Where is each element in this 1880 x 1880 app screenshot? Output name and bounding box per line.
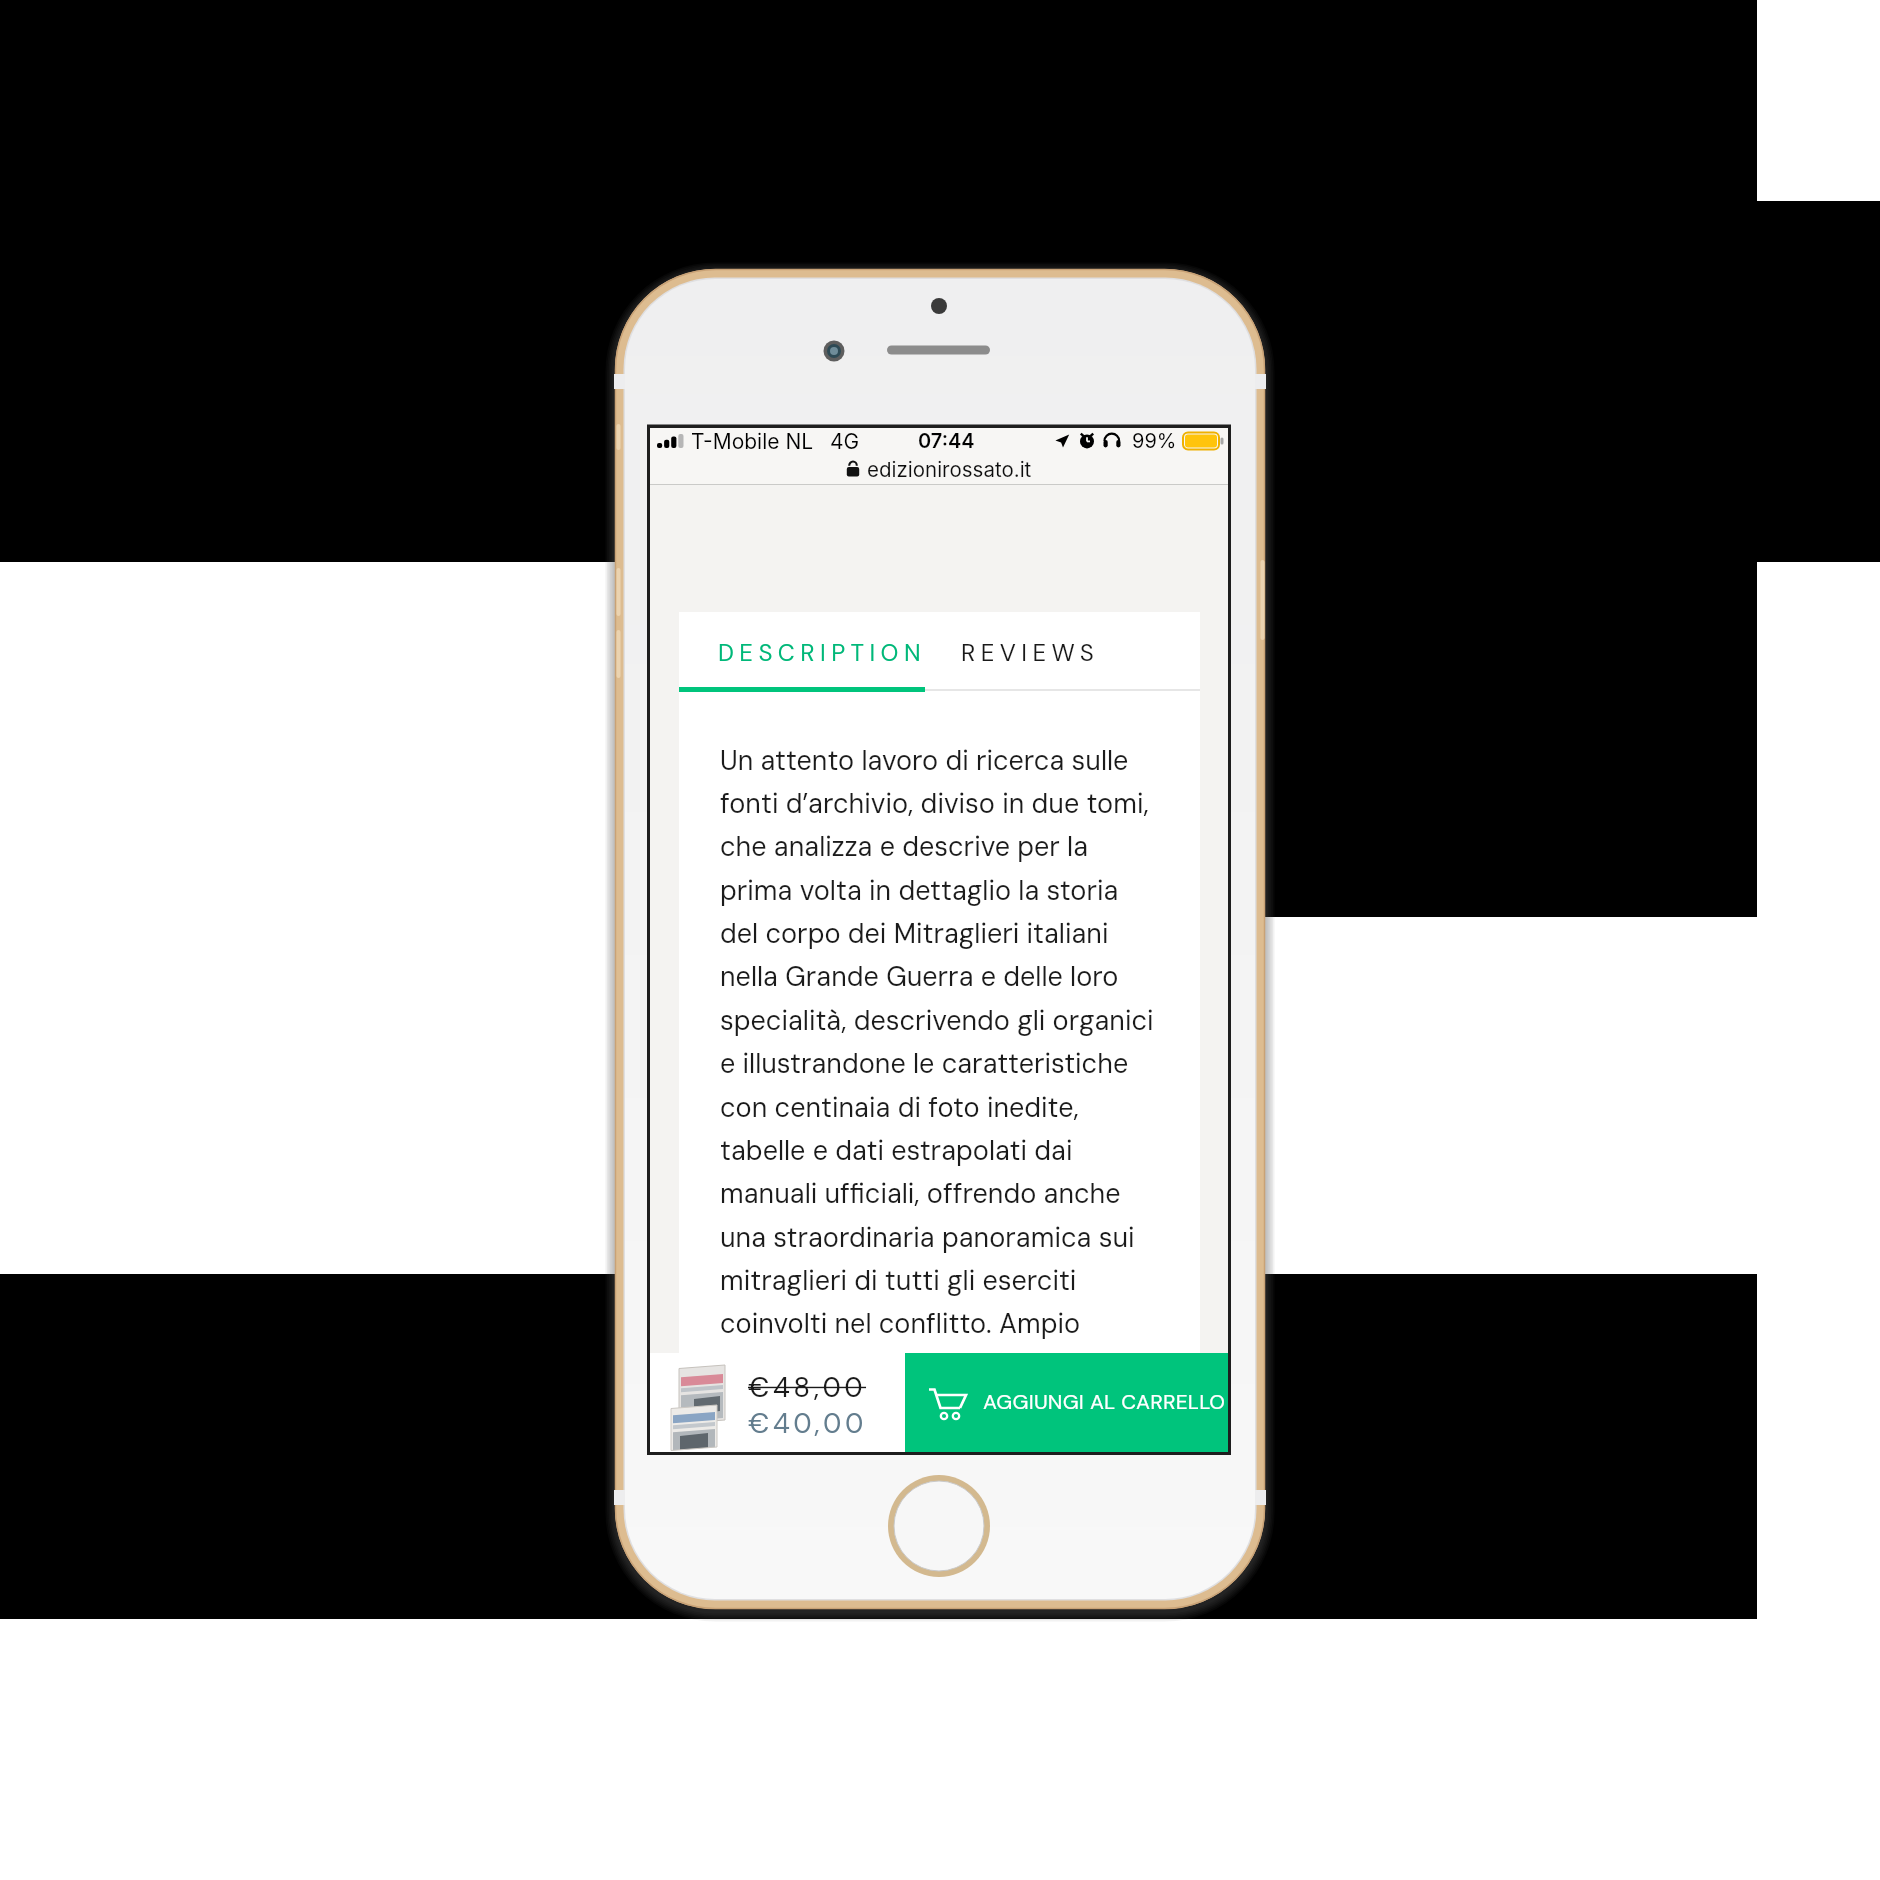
other: Add to cart bbox=[929, 1388, 967, 1422]
staticText: una straordinaria panoramica sui bbox=[720, 1220, 1135, 1255]
staticText: e illustrandone le caratteristiche bbox=[720, 1046, 1129, 1081]
staticText: REVIEWS bbox=[961, 637, 1100, 668]
staticText: prima volta in dettaglio la storia bbox=[720, 873, 1119, 908]
staticText: Un attento lavoro di ricerca sulle bbox=[720, 743, 1129, 778]
staticText: tabelle e dati estrapolati dai bbox=[720, 1133, 1073, 1168]
button[interactable] bbox=[650, 1353, 905, 1452]
staticText: edizionirossato.it bbox=[867, 457, 1032, 482]
staticText: €40,00 bbox=[748, 1405, 867, 1441]
staticText: del corpo dei Mitraglieri italiani bbox=[720, 916, 1109, 951]
staticText: coinvolti nel conflitto. Ampio bbox=[720, 1306, 1081, 1341]
button[interactable]: Add to cart bbox=[905, 1353, 1228, 1452]
staticText: €48,00 bbox=[748, 1369, 867, 1405]
staticText: nella Grande Guerra e delle loro bbox=[720, 959, 1119, 994]
staticText: 99% bbox=[1132, 429, 1177, 453]
staticText: mitraglieri di tutti gli eserciti bbox=[720, 1263, 1077, 1298]
staticText: T-Mobile NL bbox=[691, 429, 814, 454]
staticText: fonti d’archivio, diviso in due tomi, bbox=[720, 786, 1149, 821]
other: Location bbox=[1055, 434, 1070, 448]
staticText: DESCRIPTION bbox=[718, 637, 926, 668]
button[interactable]: REVIEWS bbox=[925, 612, 1125, 690]
button[interactable]: edizionirossato.it bbox=[650, 455, 1228, 483]
staticText: con centinaia di foto inedite, bbox=[720, 1090, 1079, 1125]
staticText: 4G bbox=[830, 429, 860, 454]
staticText: manuali ufficiali, offrendo anche bbox=[720, 1176, 1121, 1211]
staticText: 07:44 bbox=[918, 429, 975, 453]
staticText: specialità, descrivendo gli organici bbox=[720, 1003, 1154, 1038]
staticText: che analizza e descrive per la bbox=[720, 829, 1089, 864]
staticText: AGGIUNGI AL CARRELLO bbox=[983, 1388, 1226, 1415]
button[interactable]: DESCRIPTION bbox=[679, 612, 925, 690]
